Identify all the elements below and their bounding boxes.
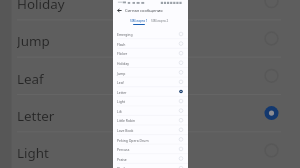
staticText: Emerging xyxy=(117,32,133,37)
button[interactable]: SIM-карта 2 xyxy=(151,19,169,23)
button[interactable]: SIM-карта 1 xyxy=(130,19,148,25)
staticText: SIM-карта 2 xyxy=(151,19,169,23)
staticText: Flash xyxy=(117,42,126,47)
button[interactable]: Light xyxy=(113,96,188,106)
staticText: Lilt xyxy=(117,109,122,114)
button[interactable]: Flash xyxy=(113,39,188,49)
button[interactable]: Flicker xyxy=(113,48,188,58)
staticText: Сигнал сообщения xyxy=(125,8,163,13)
button[interactable]: Praise xyxy=(113,154,188,164)
staticText: Praise xyxy=(117,157,127,162)
staticText: Holiday xyxy=(117,61,130,66)
staticText: Jump xyxy=(117,71,126,76)
button[interactable]: Holiday xyxy=(113,58,188,68)
staticText: Light xyxy=(17,144,49,161)
button[interactable]: Leaf xyxy=(113,77,188,87)
staticText: Leaf xyxy=(17,70,44,87)
staticText: Jump xyxy=(17,32,50,49)
staticText: Peking Opera Drum xyxy=(117,138,149,143)
staticText: Holiday xyxy=(17,0,65,12)
staticText: Letter xyxy=(117,90,127,95)
button[interactable]: Jump xyxy=(113,68,188,78)
staticText: Percuss xyxy=(117,147,130,152)
staticText: Little Robin xyxy=(117,118,135,123)
button[interactable]: Peking Opera Drum xyxy=(113,135,188,145)
staticText: Light xyxy=(117,99,126,104)
staticText: Leaf xyxy=(117,80,124,85)
staticText: Rhythm xyxy=(117,166,130,168)
staticText: Letter xyxy=(17,107,55,124)
button[interactable]: Little Robin xyxy=(113,115,188,125)
button[interactable]: Letter xyxy=(113,87,188,97)
staticText: Flicker xyxy=(117,51,128,56)
button[interactable]: Percuss xyxy=(113,144,188,154)
staticText: Love Book xyxy=(117,128,134,133)
staticText: SIM-карта 1 xyxy=(130,19,148,23)
button[interactable]: Love Book xyxy=(113,125,188,135)
button[interactable]: Lilt xyxy=(113,106,188,116)
button[interactable]: Emerging xyxy=(113,29,188,39)
button[interactable]: Rhythm xyxy=(113,163,188,168)
button[interactable]: Back xyxy=(116,7,123,14)
